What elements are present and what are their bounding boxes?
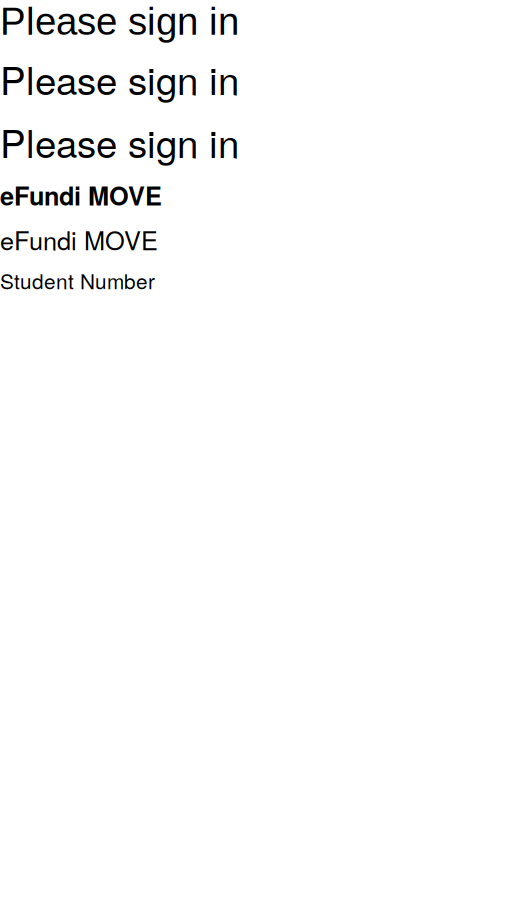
staticText: eFundi MOVE	[0, 221, 158, 257]
staticText: Please sign in	[0, 51, 239, 106]
staticText: Student Number	[0, 265, 155, 295]
staticText: eFundi MOVE	[0, 177, 162, 213]
staticText: Please sign in	[0, 0, 239, 43]
staticText: Please sign in	[0, 114, 239, 169]
